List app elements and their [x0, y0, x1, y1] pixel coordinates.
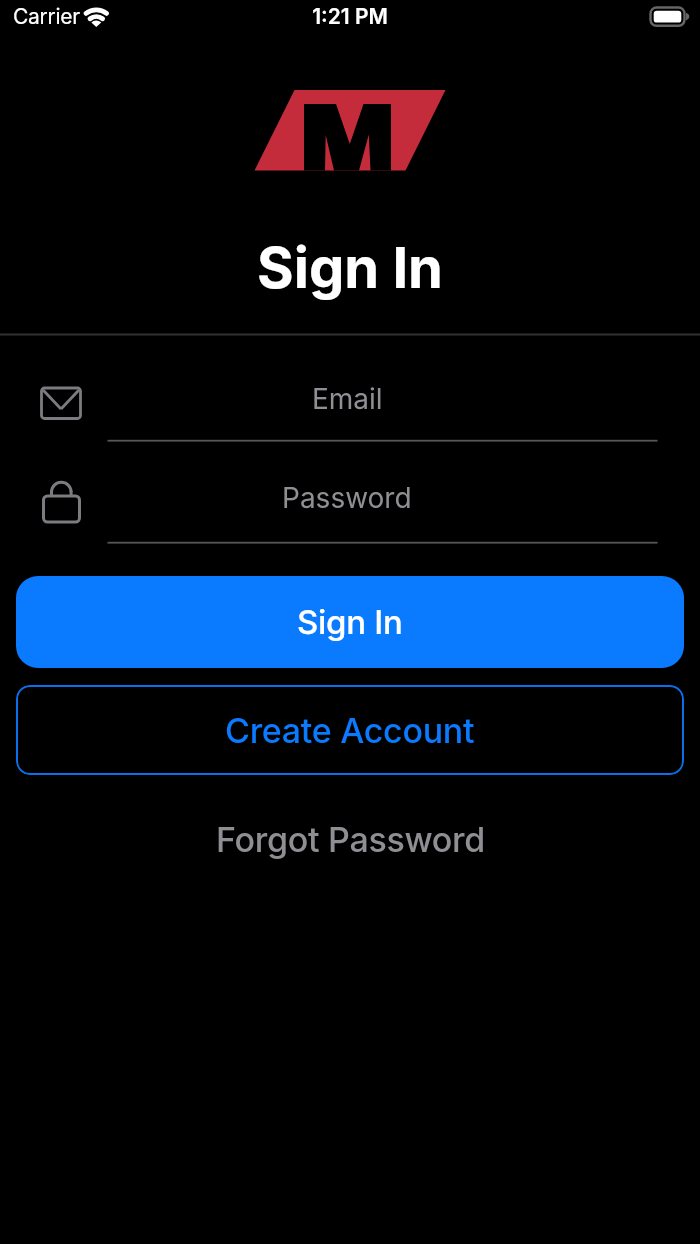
button[interactable]: Password — [108, 468, 658, 542]
staticText: 1:21 PM — [312, 4, 388, 29]
staticText: Carrier — [13, 4, 80, 29]
button[interactable]: Create Account — [16, 685, 684, 775]
button[interactable]: Email — [108, 368, 658, 442]
staticText: Forgot Password — [216, 819, 485, 860]
staticText: Sign In — [297, 602, 403, 642]
staticText: Password — [282, 481, 412, 515]
button[interactable]: Forgot Password — [0, 813, 700, 865]
staticText: Create Account — [225, 710, 475, 751]
button[interactable]: Sign In — [16, 576, 684, 668]
staticText: Email — [312, 382, 383, 416]
staticText: Sign In — [257, 234, 443, 302]
